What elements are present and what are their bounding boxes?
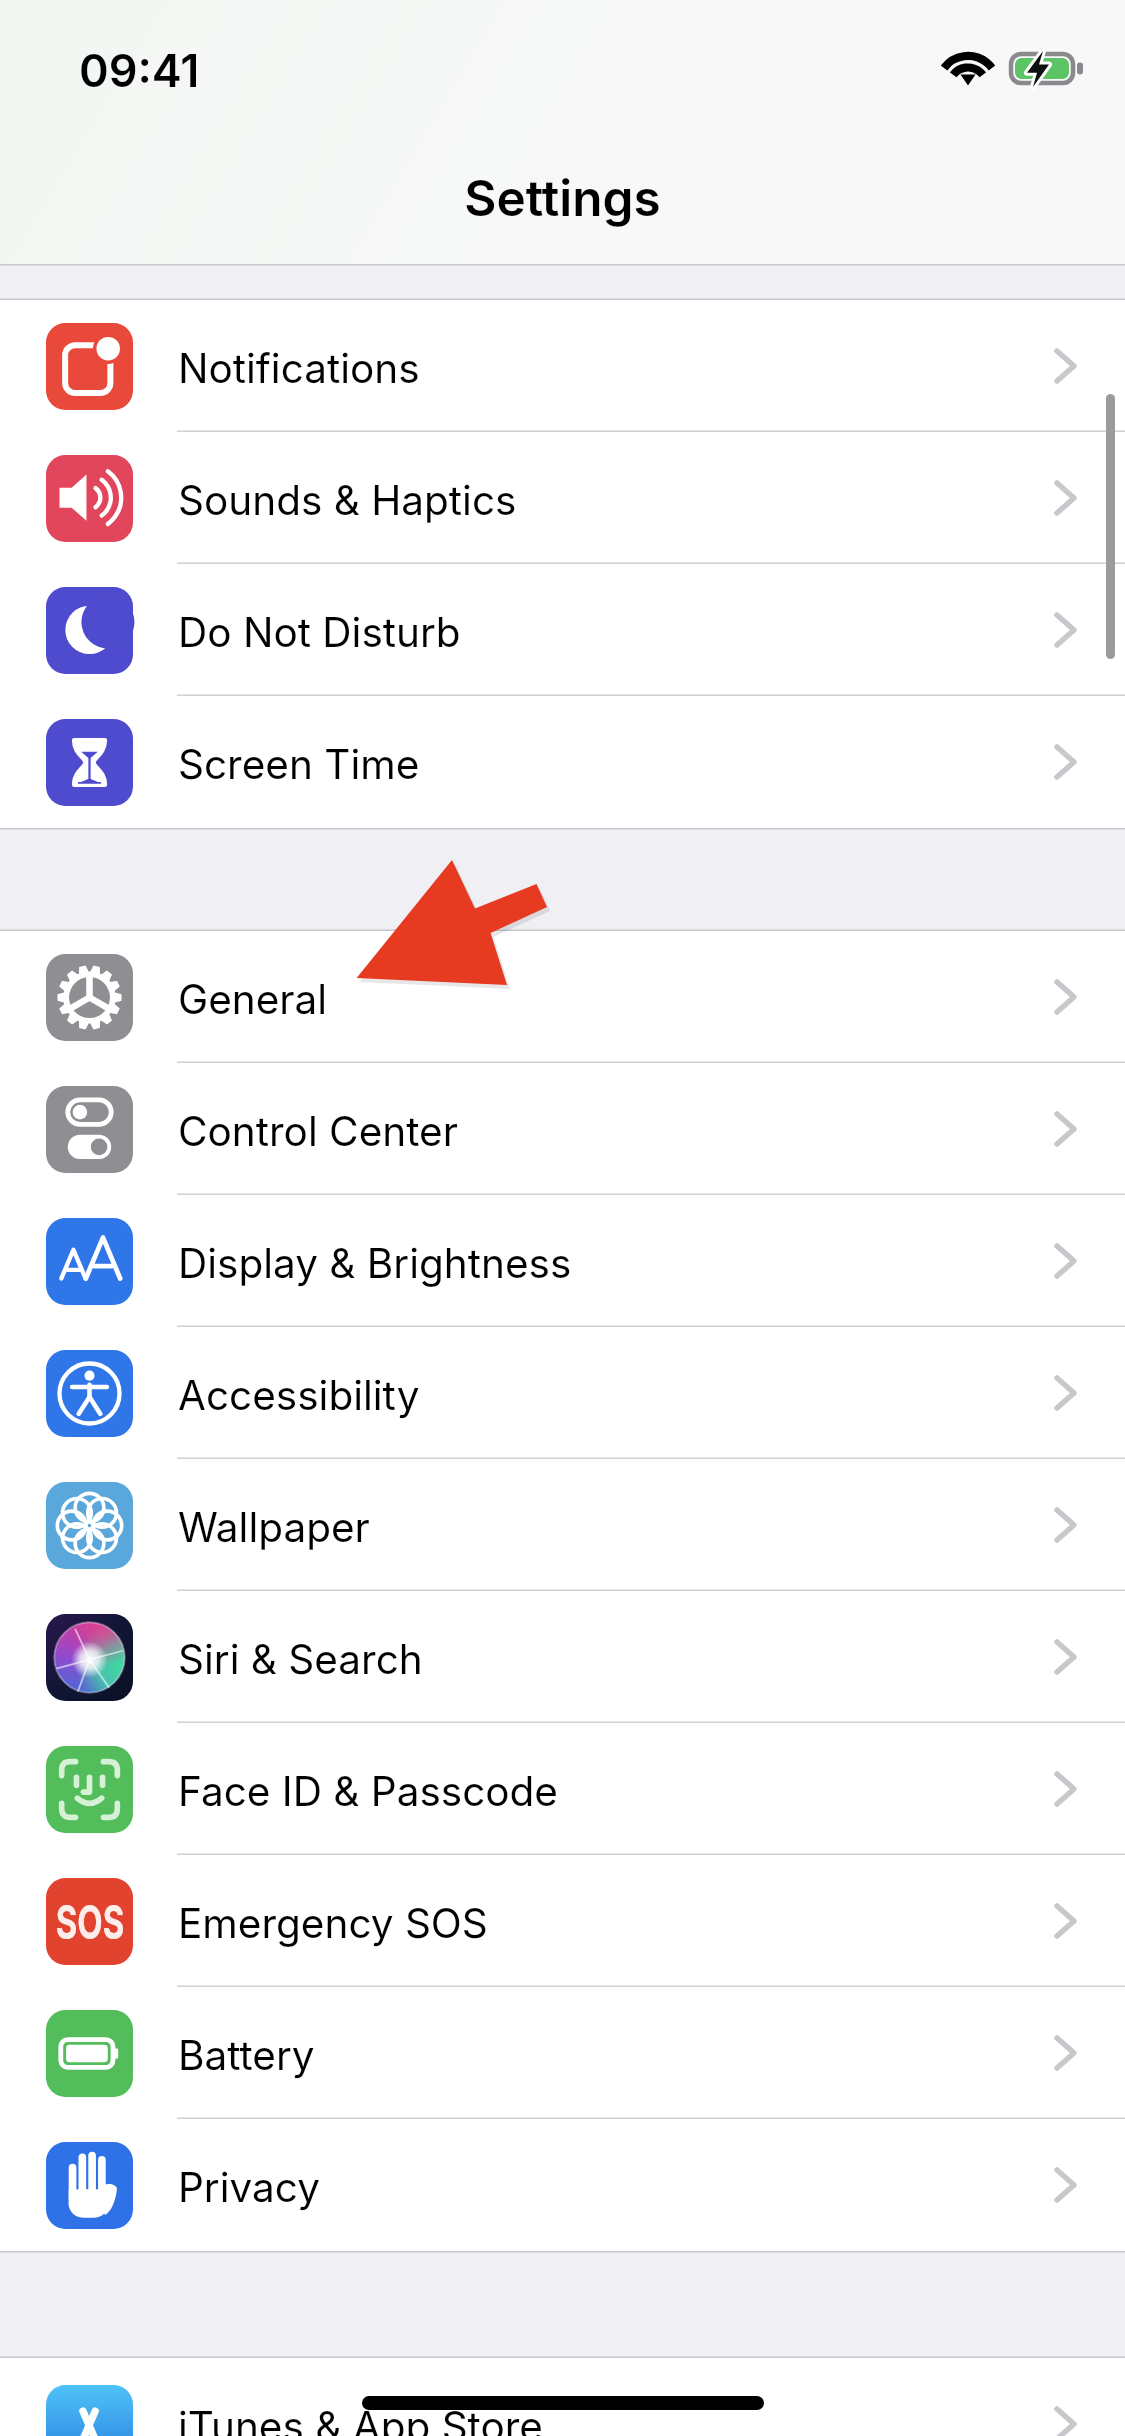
staticText: Display & Brightness (178, 1239, 572, 1288)
staticText: Notifications (178, 344, 420, 393)
staticText: General (178, 975, 328, 1024)
staticText: Wallpaper (178, 1503, 370, 1552)
staticText: Settings (0, 168, 1125, 228)
button[interactable]: Notifications (0, 300, 1125, 432)
button[interactable]: Screen Time (0, 696, 1125, 828)
button[interactable]: General (0, 931, 1125, 1063)
staticText: Screen Time (178, 740, 420, 789)
staticText: iTunes & App Store (178, 2402, 543, 2436)
staticText: 09:41 (79, 43, 200, 97)
button[interactable]: Face ID & Passcode (0, 1723, 1125, 1855)
button[interactable]: iTunes & App Store (0, 2385, 1125, 2436)
button[interactable]: Sounds & Haptics (0, 432, 1125, 564)
button[interactable]: Control Center (0, 1063, 1125, 1195)
staticText: Siri & Search (178, 1635, 423, 1684)
staticText: Sounds & Haptics (178, 476, 517, 525)
button[interactable]: Wallpaper (0, 1459, 1125, 1591)
staticText: Face ID & Passcode (178, 1767, 558, 1816)
staticText: Battery (178, 2031, 315, 2080)
button[interactable]: Accessibility (0, 1327, 1125, 1459)
button[interactable]: Privacy (0, 2119, 1125, 2251)
staticText: Emergency SOS (178, 1899, 488, 1948)
button[interactable]: Battery (0, 1987, 1125, 2119)
staticText: Do Not Disturb (178, 608, 461, 657)
staticText: Accessibility (178, 1371, 420, 1420)
button[interactable]: Do Not Disturb (0, 564, 1125, 696)
button[interactable]: Display & Brightness (0, 1195, 1125, 1327)
button[interactable]: Siri & Search (0, 1591, 1125, 1723)
staticText: Privacy (178, 2163, 320, 2212)
staticText: SOS (20, 1893, 160, 1950)
staticText: Control Center (178, 1107, 458, 1156)
button[interactable]: SOS (0, 1855, 1125, 1987)
